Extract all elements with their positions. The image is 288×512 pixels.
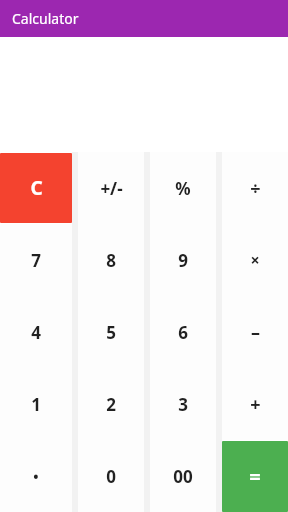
button[interactable]: 00 <box>150 440 216 512</box>
staticText: 8 <box>106 249 116 272</box>
button[interactable]: 0 <box>78 440 144 512</box>
staticText: Calculator <box>12 9 79 28</box>
button[interactable]: ÷ <box>222 152 288 224</box>
staticText: + <box>250 392 261 417</box>
button[interactable]: % <box>150 152 216 224</box>
staticText: = <box>249 463 261 490</box>
staticText: 3 <box>178 393 188 416</box>
button[interactable]: 9 <box>150 224 216 296</box>
staticText: % <box>175 177 191 200</box>
button[interactable]: 8 <box>78 224 144 296</box>
staticText: 1 <box>31 393 41 416</box>
staticText: 5 <box>106 321 116 344</box>
staticText: 4 <box>31 321 41 344</box>
button[interactable]: – <box>222 296 288 368</box>
button[interactable]: = <box>222 441 288 512</box>
button[interactable]: C <box>0 153 72 223</box>
button[interactable]: 2 <box>78 368 144 440</box>
staticText: – <box>251 320 260 345</box>
staticText: 9 <box>178 249 188 272</box>
staticText: • <box>33 467 39 486</box>
button[interactable]: • <box>0 440 72 512</box>
button[interactable]: + <box>222 368 288 440</box>
button[interactable]: × <box>222 224 288 296</box>
staticText: ÷ <box>250 176 261 201</box>
staticText: C <box>30 175 43 201</box>
staticText: 00 <box>173 465 193 488</box>
button[interactable]: 4 <box>0 296 72 368</box>
button[interactable]: 7 <box>0 224 72 296</box>
staticText: +/- <box>100 177 123 200</box>
button[interactable]: 1 <box>0 368 72 440</box>
staticText: 2 <box>106 393 116 416</box>
button[interactable]: +/- <box>78 152 144 224</box>
staticText: 6 <box>178 321 188 344</box>
staticText: × <box>250 249 260 271</box>
staticText: 7 <box>31 249 41 272</box>
button[interactable]: 3 <box>150 368 216 440</box>
button[interactable]: 5 <box>78 296 144 368</box>
staticText: 0 <box>106 465 116 488</box>
button[interactable]: 6 <box>150 296 216 368</box>
